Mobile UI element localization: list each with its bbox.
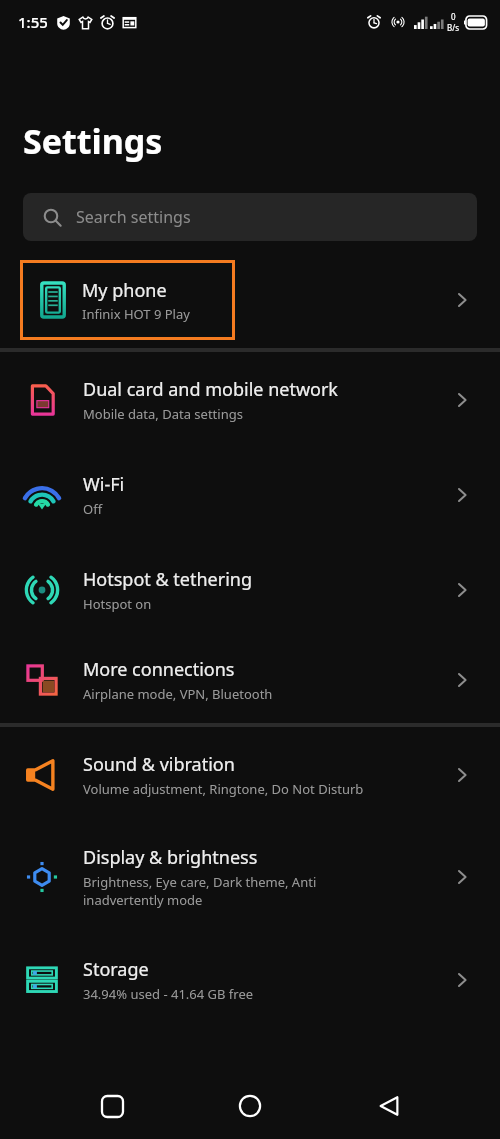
staticText: Dual card and mobile network (83, 377, 338, 402)
staticText: Settings (23, 118, 163, 164)
button[interactable]: More connections (0, 637, 500, 723)
button[interactable]: Back (362, 1079, 416, 1133)
staticText: Storage (83, 957, 149, 982)
button[interactable]: Hotspot & tethering (0, 542, 500, 637)
staticText: Off (83, 500, 103, 518)
staticText: Volume adjustment, Ringtone, Do Not Dist… (83, 780, 364, 798)
staticText: More connections (83, 657, 235, 682)
button[interactable]: Recent apps (85, 1079, 139, 1133)
button[interactable]: Storage (0, 932, 500, 1027)
staticText: Brightness, Eye care, Dark theme, Anti i… (83, 873, 317, 909)
staticText: Display & brightness (83, 845, 258, 870)
staticText: Airplane mode, VPN, Bluetooth (83, 685, 273, 703)
staticText: Sound & vibration (83, 752, 235, 777)
staticText: Search settings (76, 206, 191, 228)
staticText: Mobile data, Data settings (83, 405, 243, 423)
staticText: 1:55 (18, 12, 48, 32)
button[interactable]: Sound & vibration (0, 727, 500, 822)
staticText: Hotspot & tethering (83, 567, 253, 592)
staticText: 0 (451, 11, 456, 22)
button[interactable]: Home (223, 1079, 277, 1133)
button[interactable]: Wi-Fi (0, 447, 500, 542)
staticText: B/s (447, 22, 460, 33)
button[interactable]: My phone (23, 263, 232, 337)
staticText: Hotspot on (83, 595, 152, 613)
staticText: 34.94% used - 41.64 GB free (83, 985, 254, 1003)
button[interactable]: Display & brightness (0, 822, 500, 932)
button[interactable]: Dual card and mobile network (0, 352, 500, 447)
button[interactable]: Search settings (23, 193, 477, 241)
staticText: My phone (82, 278, 167, 303)
staticText: Infinix HOT 9 Play (82, 305, 190, 323)
staticText: Wi-Fi (83, 472, 125, 497)
